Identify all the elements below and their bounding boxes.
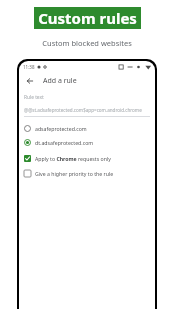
staticText: Apply to Chrome requests only xyxy=(35,155,111,162)
staticText: Give a higher priority to the rule xyxy=(35,170,114,177)
button[interactable]: adsafeprotected.com xyxy=(24,123,150,133)
staticText: Add a rule xyxy=(43,76,77,86)
staticText: dt.adsafeprotected.com xyxy=(35,139,94,146)
staticText: Custom blocked websites xyxy=(42,38,132,48)
button[interactable]: Back xyxy=(24,75,36,87)
button[interactable]: Apply to Chrome requests only xyxy=(24,153,150,163)
staticText: @@st.adsafeprotected.com$app=com.android… xyxy=(24,107,142,113)
staticText: Rule text xyxy=(24,94,44,101)
button[interactable]: dt.adsafeprotected.com xyxy=(24,137,150,147)
staticText: adsafeprotected.com xyxy=(35,125,87,132)
button[interactable]: Give a higher priority to the rule xyxy=(24,168,150,178)
staticText: Custom rules xyxy=(38,8,137,28)
staticText: 11:38 xyxy=(23,64,35,70)
